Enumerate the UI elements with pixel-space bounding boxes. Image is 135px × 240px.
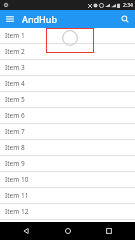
button[interactable]: Item 10	[0, 172, 135, 188]
button[interactable]: Item 9	[0, 156, 135, 172]
button[interactable]: Item 1	[0, 28, 135, 44]
button[interactable]: Item 5	[0, 92, 135, 108]
staticText: Item 2	[5, 47, 25, 56]
staticText: Item 12	[5, 207, 29, 216]
button[interactable]: Open navigation drawer	[4, 13, 16, 25]
staticText: Item 4	[5, 79, 25, 88]
staticText: Item 11	[5, 191, 29, 200]
button[interactable]: Item 3	[0, 60, 135, 76]
staticText: Item 8	[5, 143, 25, 152]
button[interactable]: Item 4	[0, 76, 135, 92]
button[interactable]: Home	[53, 222, 83, 240]
button[interactable]: Item 7	[0, 124, 135, 140]
button[interactable]: Item 6	[0, 108, 135, 124]
button[interactable]: Back	[11, 222, 41, 240]
button[interactable]: Item 12	[0, 204, 135, 220]
staticText: Item 1	[5, 31, 25, 40]
staticText: Item 5	[5, 95, 25, 104]
button[interactable]: Recent apps	[94, 222, 124, 240]
button[interactable]: Item 8	[0, 140, 135, 156]
button[interactable]: Search	[119, 13, 131, 25]
button[interactable]: Item 2	[0, 44, 135, 60]
staticText: AndHub	[22, 13, 58, 25]
staticText: 2:34	[123, 2, 133, 9]
staticText: Item 9	[5, 159, 25, 168]
staticText: Item 10	[5, 175, 29, 184]
staticText: Item 7	[5, 127, 25, 136]
staticText: Item 6	[5, 111, 25, 120]
button[interactable]: Item 11	[0, 188, 135, 204]
staticText: Item 3	[5, 63, 25, 72]
